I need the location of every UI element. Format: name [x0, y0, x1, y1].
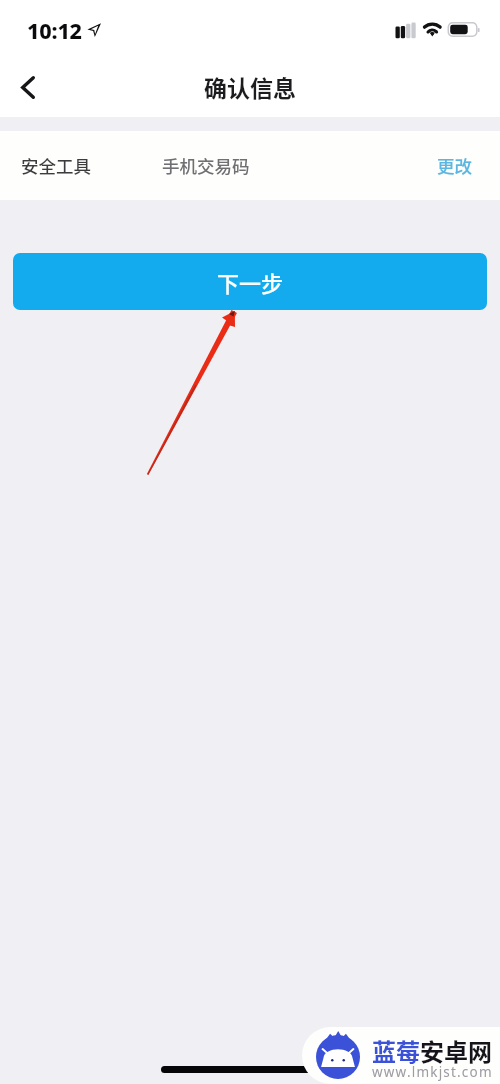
- staticText: 蓝莓: [372, 1033, 420, 1068]
- staticText: 更改: [437, 153, 472, 178]
- button[interactable]: 安全工具: [0, 131, 500, 200]
- staticText: 安全工具: [21, 153, 91, 178]
- staticText: 确认信息: [204, 70, 296, 103]
- staticText: www.lmkjst.com: [372, 1063, 493, 1081]
- staticText: 10:12: [27, 16, 82, 45]
- button[interactable]: 下一步: [13, 253, 487, 310]
- staticText: 手机交易码: [162, 153, 250, 178]
- staticText: 下一步: [217, 266, 284, 298]
- staticText: 安卓网: [420, 1033, 492, 1068]
- button[interactable]: Back: [6, 65, 50, 109]
